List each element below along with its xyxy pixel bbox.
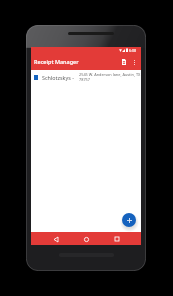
button[interactable]: Recents xyxy=(111,233,123,245)
button[interactable]: Schlotzskys - xyxy=(31,70,141,84)
staticText: Receipt Manager xyxy=(34,58,79,65)
staticText: 78757 xyxy=(79,77,90,82)
button[interactable]: Receipts xyxy=(118,55,129,69)
button[interactable]: Home xyxy=(80,233,92,245)
button[interactable]: Back xyxy=(50,233,62,245)
button[interactable]: More options xyxy=(130,55,138,69)
staticText: 6:08 xyxy=(129,48,137,53)
button[interactable]: Add receipt xyxy=(122,213,136,227)
staticText: Schlotzskys - xyxy=(42,74,74,81)
staticText: 2545 W. Anderson lane, Austin, TX xyxy=(79,72,141,77)
